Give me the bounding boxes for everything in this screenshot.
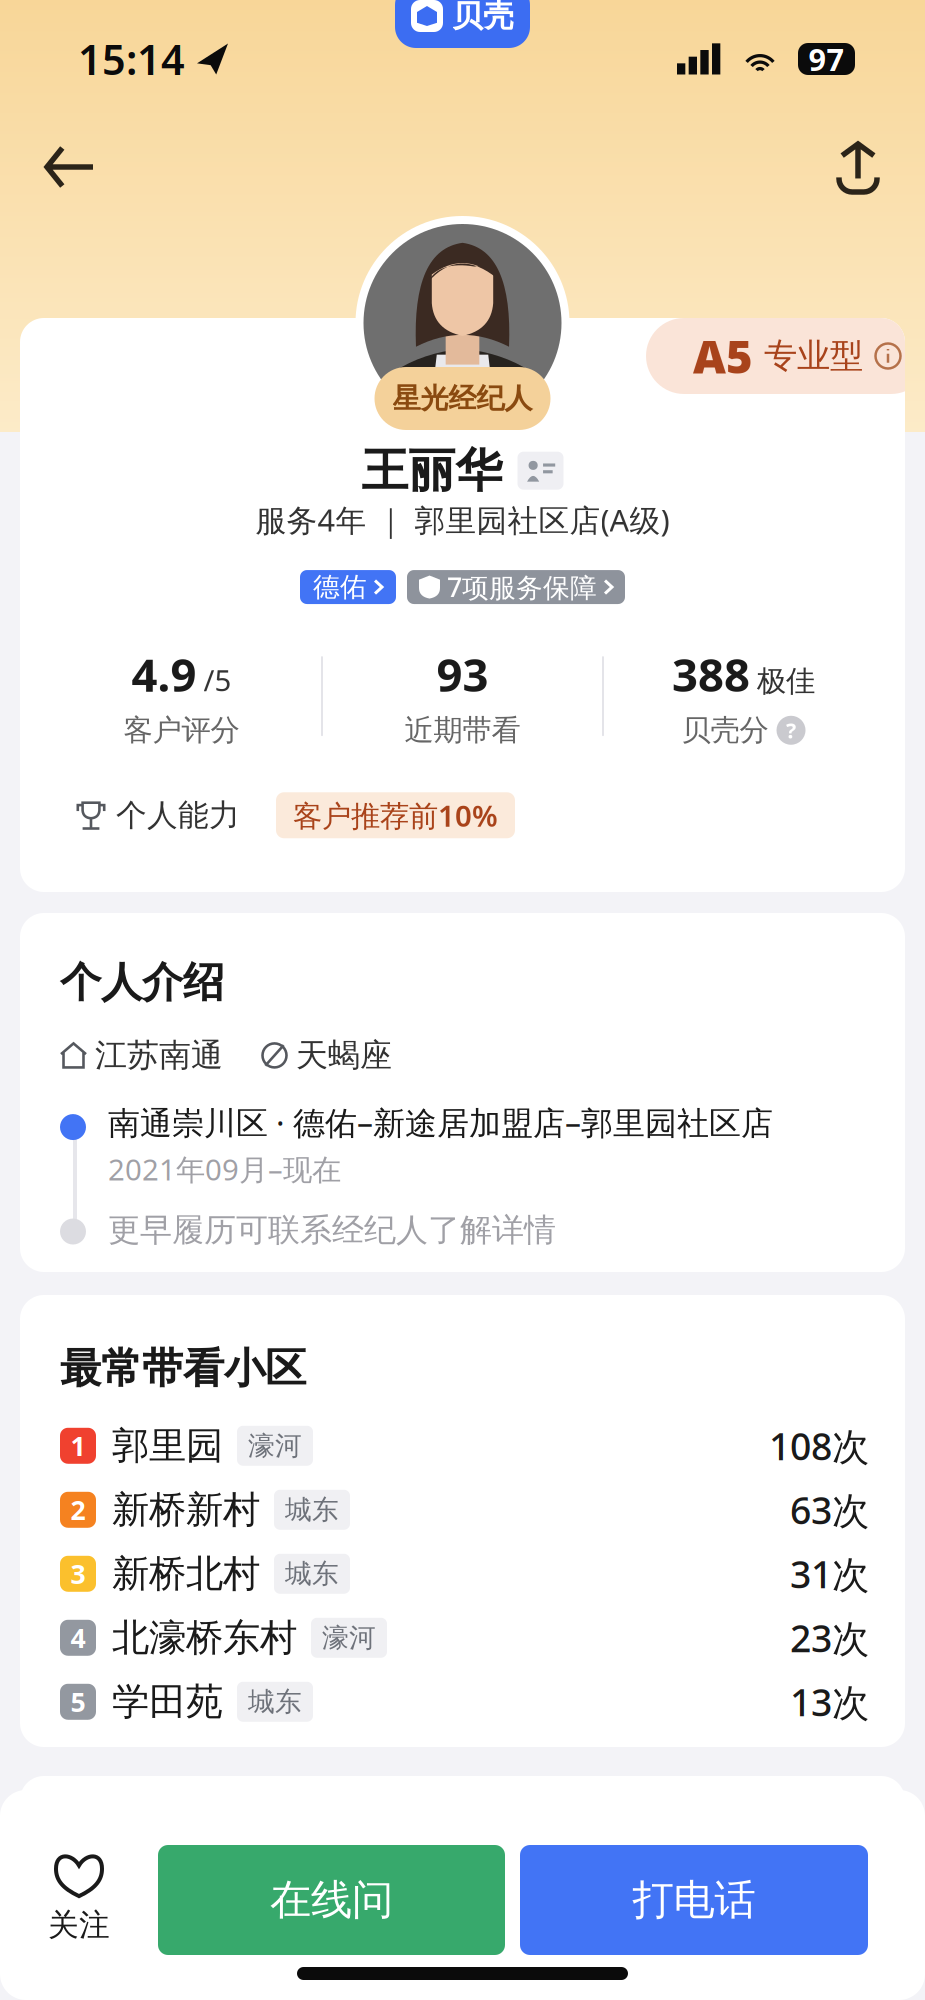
staticText: 个人能力 bbox=[116, 796, 240, 834]
button[interactable]: 4 bbox=[60, 1606, 869, 1670]
button[interactable]: 在线问 bbox=[158, 1845, 505, 1955]
staticText: 专业型 bbox=[764, 335, 863, 376]
staticText: 客户推荐前10% bbox=[293, 796, 498, 835]
staticText: 城东 bbox=[248, 1685, 302, 1718]
staticText: 31次 bbox=[790, 1549, 869, 1599]
staticText: 江苏南通 bbox=[95, 1036, 223, 1075]
staticText: 学田苑 bbox=[112, 1679, 223, 1725]
staticText: 63次 bbox=[790, 1485, 869, 1535]
staticText: 1 bbox=[70, 1428, 85, 1463]
staticText: 7项服务保障 bbox=[447, 569, 597, 605]
staticText: 德佑 bbox=[313, 571, 367, 603]
button[interactable]: 3 bbox=[60, 1542, 869, 1606]
staticText: 2021年09月–现在 bbox=[108, 1150, 341, 1189]
button[interactable]: 德佑 bbox=[300, 570, 396, 604]
staticText: 王丽华 bbox=[361, 442, 502, 499]
staticText: 108次 bbox=[769, 1421, 869, 1471]
staticText: 23次 bbox=[790, 1613, 869, 1663]
staticText: 城东 bbox=[285, 1557, 339, 1590]
staticText: 极佳 bbox=[757, 663, 815, 699]
staticText: 15:14 bbox=[78, 32, 185, 86]
staticText: 贝壳 bbox=[452, 0, 514, 35]
staticText: 388 bbox=[672, 644, 750, 704]
staticText: 93 bbox=[436, 644, 488, 704]
staticText: 13次 bbox=[790, 1677, 869, 1727]
staticText: 濠河 bbox=[248, 1429, 302, 1462]
staticText: /5 bbox=[203, 660, 231, 699]
staticText: 郭里园 bbox=[112, 1423, 223, 1469]
staticText: 97 bbox=[808, 39, 844, 79]
staticText: 4 bbox=[70, 1620, 85, 1655]
button[interactable]: 2 bbox=[60, 1478, 869, 1542]
button[interactable]: 7项服务保障 bbox=[407, 570, 625, 604]
button[interactable]: 1 bbox=[60, 1414, 869, 1478]
staticText: 近期带看 bbox=[404, 712, 520, 748]
staticText: 新桥新村 bbox=[112, 1487, 260, 1533]
staticText: 最常带看小区 bbox=[60, 1343, 306, 1394]
staticText: 濠河 bbox=[322, 1621, 376, 1654]
staticText: 贝壳分 bbox=[681, 712, 768, 748]
staticText: 2 bbox=[70, 1492, 85, 1527]
staticText: 客户评分 bbox=[123, 712, 239, 748]
button[interactable]: Share bbox=[814, 119, 902, 215]
staticText: 5 bbox=[70, 1684, 85, 1719]
staticText: 更早履历可联系经纪人了解详情 bbox=[108, 1210, 556, 1250]
button[interactable]: 打电话 bbox=[520, 1845, 868, 1955]
button[interactable]: Back bbox=[23, 126, 115, 208]
staticText: 关注 bbox=[48, 1906, 110, 1944]
staticText: 南通崇川区 · 德佑–新途居加盟店–郭里园社区店 bbox=[108, 1101, 773, 1144]
staticText: 在线问 bbox=[270, 1875, 393, 1925]
button[interactable]: 关注 bbox=[0, 1845, 158, 1955]
staticText: 3 bbox=[70, 1556, 85, 1591]
staticText: 城东 bbox=[285, 1493, 339, 1526]
staticText: 服务4年 ｜ 郭里园社区店(A级) bbox=[255, 499, 669, 540]
staticText: 打电话 bbox=[632, 1875, 755, 1925]
staticText: 北濠桥东村 bbox=[112, 1615, 297, 1661]
button[interactable]: Agent card bbox=[517, 452, 563, 490]
staticText: A5 bbox=[693, 326, 753, 386]
staticText: 天蝎座 bbox=[296, 1036, 392, 1075]
staticText: ? bbox=[786, 716, 796, 744]
staticText: 星光经纪人 bbox=[392, 381, 532, 416]
staticText: 4.9 bbox=[131, 644, 196, 704]
staticText: 个人介绍 bbox=[60, 957, 224, 1008]
button[interactable]: A5 专业型 bbox=[646, 318, 905, 394]
staticText: 新桥北村 bbox=[112, 1551, 260, 1597]
button[interactable]: 5 bbox=[60, 1670, 869, 1734]
